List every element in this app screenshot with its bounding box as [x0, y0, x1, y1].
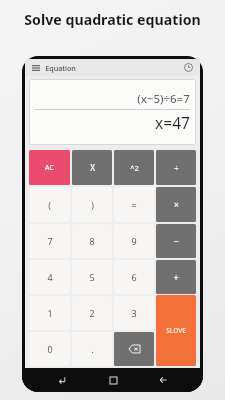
button[interactable]: 9	[114, 224, 154, 258]
button[interactable]: ÷	[156, 150, 196, 185]
button[interactable]: Home	[102, 369, 124, 391]
staticText: ×	[174, 199, 179, 211]
button[interactable]: 1	[29, 296, 70, 330]
staticText: .	[91, 343, 94, 355]
staticText: 2	[89, 307, 95, 319]
button[interactable]: (	[29, 187, 70, 222]
button[interactable]: =	[114, 187, 154, 222]
staticText: X	[90, 162, 95, 173]
staticText: (x−5)÷6=7	[137, 91, 190, 107]
staticText: 1	[47, 307, 53, 319]
staticText: 8	[89, 235, 95, 247]
staticText: AC	[45, 163, 54, 173]
staticText: +	[173, 271, 179, 283]
staticText: 0	[47, 343, 53, 355]
staticText: 9	[131, 235, 137, 247]
button[interactable]: SLOVE	[156, 295, 196, 366]
staticText: 4	[47, 271, 53, 283]
staticText: 6	[131, 271, 137, 283]
button[interactable]: ^2	[114, 150, 154, 185]
button[interactable]: )	[72, 187, 112, 222]
button[interactable]: 3	[114, 296, 154, 330]
button[interactable]: Recents	[51, 369, 73, 391]
button[interactable]: 8	[72, 224, 112, 258]
staticText: SLOVE	[166, 326, 186, 335]
button[interactable]: +	[156, 260, 196, 294]
staticText: ^2	[130, 163, 139, 173]
staticText: Solve quadratic equation	[24, 10, 201, 29]
button[interactable]: X	[72, 150, 112, 185]
button[interactable]: 6	[114, 260, 154, 294]
button[interactable]: ×	[156, 187, 196, 222]
button[interactable]: AC	[29, 150, 70, 185]
button[interactable]: Backspace	[114, 332, 154, 366]
button[interactable]: 2	[72, 296, 112, 330]
button[interactable]: Menu	[30, 62, 42, 74]
button[interactable]: 7	[29, 224, 70, 258]
staticText: ÷	[174, 162, 179, 174]
staticText: x=47	[155, 112, 190, 133]
button[interactable]: 0	[29, 332, 70, 366]
staticText: 7	[47, 235, 53, 247]
button[interactable]: .	[72, 332, 112, 366]
staticText: =	[131, 199, 137, 211]
button[interactable]: History	[182, 61, 195, 74]
staticText: Equation	[45, 63, 76, 73]
button[interactable]: 5	[72, 260, 112, 294]
button[interactable]: −	[156, 224, 196, 258]
staticText: )	[91, 199, 94, 211]
staticText: 5	[89, 271, 95, 283]
staticText: −	[173, 235, 179, 247]
staticText: 3	[131, 307, 137, 319]
button[interactable]: Back	[152, 369, 174, 391]
button[interactable]: 4	[29, 260, 70, 294]
staticText: (	[48, 199, 51, 211]
